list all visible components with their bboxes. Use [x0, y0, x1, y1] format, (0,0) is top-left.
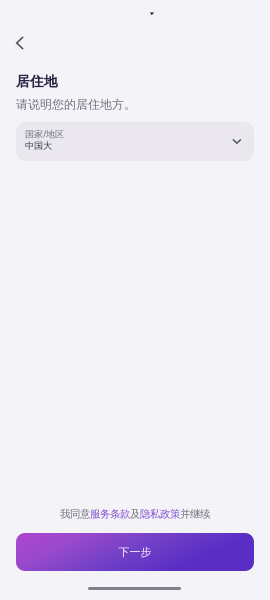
button[interactable]: 国家/地区: [16, 122, 254, 161]
staticText: 我同意: [60, 507, 90, 521]
staticText: 隐私政策: [140, 507, 180, 521]
staticText: 服务条款: [90, 507, 130, 521]
button[interactable]: Back: [0, 21, 42, 65]
staticText: 国家/地区: [25, 128, 64, 140]
staticText: 下一步: [118, 545, 151, 559]
staticText: 中国大: [25, 140, 52, 151]
staticText: 并继续: [180, 507, 210, 521]
staticText: 请说明您的居住地方。: [16, 97, 136, 112]
staticText: 居住地: [16, 73, 58, 90]
button[interactable]: 服务条款: [90, 507, 130, 521]
button[interactable]: 隐私政策: [140, 507, 180, 521]
button[interactable]: 下一步: [16, 533, 254, 571]
staticText: 及: [130, 507, 140, 521]
